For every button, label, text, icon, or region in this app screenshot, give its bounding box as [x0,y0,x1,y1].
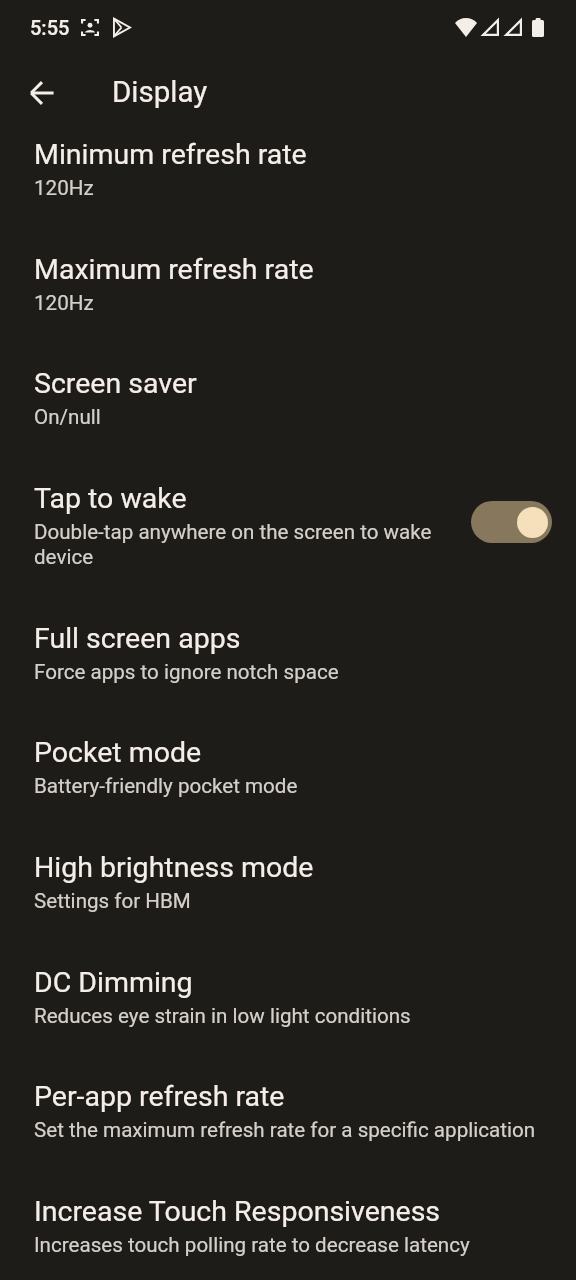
button[interactable]: Per-app refresh rate [0,1053,576,1142]
button[interactable]: Minimum refresh rate [0,111,576,200]
staticText: Tap to wake [34,481,187,515]
button[interactable]: DC Dimming [0,939,576,1028]
button[interactable]: Pocket mode [0,709,576,798]
button[interactable]: High brightness mode [0,824,576,913]
staticText: Increases touch polling rate to decrease… [34,1232,470,1257]
staticText: Display [112,75,208,110]
staticText: Per-app refresh rate [34,1079,285,1113]
button[interactable]: Maximum refresh rate [0,226,576,315]
staticText: Double-tap anywhere on the screen to wak… [34,519,459,569]
staticText: Increase Touch Responsiveness [34,1194,441,1228]
button[interactable]: Tap to wake toggle [471,501,552,543]
staticText: Settings for HBM [34,888,191,913]
staticText: On/null [34,404,101,429]
button[interactable]: Tap to wake [0,455,576,570]
staticText: Pocket mode [34,735,202,769]
button[interactable]: Screen saver [0,340,576,429]
staticText: Battery-friendly pocket mode [34,773,298,798]
staticText: DC Dimming [34,965,193,999]
staticText: Force apps to ignore notch space [34,659,339,684]
button[interactable]: Back [18,69,66,117]
button[interactable]: Full screen apps [0,595,576,684]
staticText: 120Hz [34,290,94,315]
staticText: Set the maximum refresh rate for a speci… [34,1117,536,1142]
staticText: Screen saver [34,366,197,400]
staticText: Maximum refresh rate [34,252,314,286]
staticText: Reduces eye strain in low light conditio… [34,1003,411,1028]
staticText: High brightness mode [34,850,314,884]
staticText: 5:55 [30,16,70,39]
button[interactable]: Increase Touch Responsiveness [0,1168,576,1257]
staticText: Minimum refresh rate [34,137,307,171]
staticText: Full screen apps [34,621,241,655]
staticText: 120Hz [34,175,94,200]
